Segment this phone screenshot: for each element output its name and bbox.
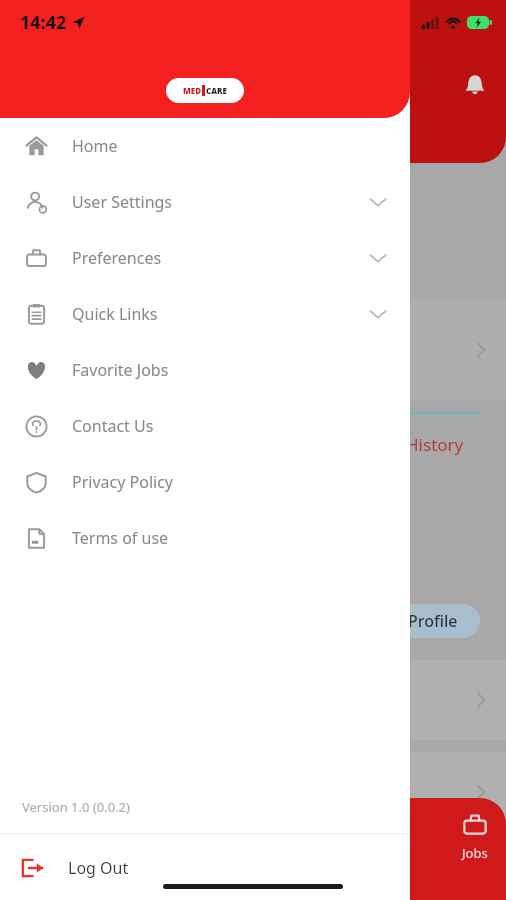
- staticText: Home: [72, 135, 118, 157]
- staticText: CARE: [206, 85, 227, 96]
- button[interactable]: [20, 300, 506, 400]
- staticText: Jobs: [462, 844, 488, 862]
- button[interactable]: Notifications: [460, 70, 490, 100]
- staticText: Favorite Jobs: [72, 359, 169, 381]
- staticText: History: [406, 433, 464, 456]
- button[interactable]: Contact Us: [0, 398, 410, 454]
- button[interactable]: [20, 660, 506, 740]
- staticText: Privacy Policy: [72, 471, 173, 493]
- button[interactable]: Favorite Jobs: [0, 342, 410, 398]
- button[interactable]: Preferences: [0, 230, 410, 286]
- staticText: Preferences: [72, 247, 162, 269]
- staticText: Terms of use: [72, 527, 169, 549]
- staticText: User Settings: [72, 191, 173, 213]
- staticText: MED: [183, 85, 201, 96]
- button[interactable]: [20, 752, 506, 832]
- staticText: Log Out: [68, 857, 129, 879]
- button[interactable]: Quick Links: [0, 286, 410, 342]
- button[interactable]: Terms of use: [0, 510, 410, 566]
- button[interactable]: Jobs: [462, 812, 488, 862]
- button[interactable]: Home: [0, 118, 410, 174]
- staticText: Version 1.0 (0.0.2): [22, 798, 130, 816]
- button[interactable]: MED: [166, 78, 244, 103]
- button[interactable]: User Settings: [0, 174, 410, 230]
- button[interactable]: Privacy Policy: [0, 454, 410, 510]
- button[interactable]: Profile: [340, 604, 480, 638]
- button[interactable]: Log Out: [0, 840, 410, 896]
- staticText: Contact Us: [72, 415, 154, 437]
- staticText: 14:42: [20, 10, 67, 35]
- staticText: Quick Links: [72, 303, 158, 325]
- staticText: Profile: [408, 610, 458, 632]
